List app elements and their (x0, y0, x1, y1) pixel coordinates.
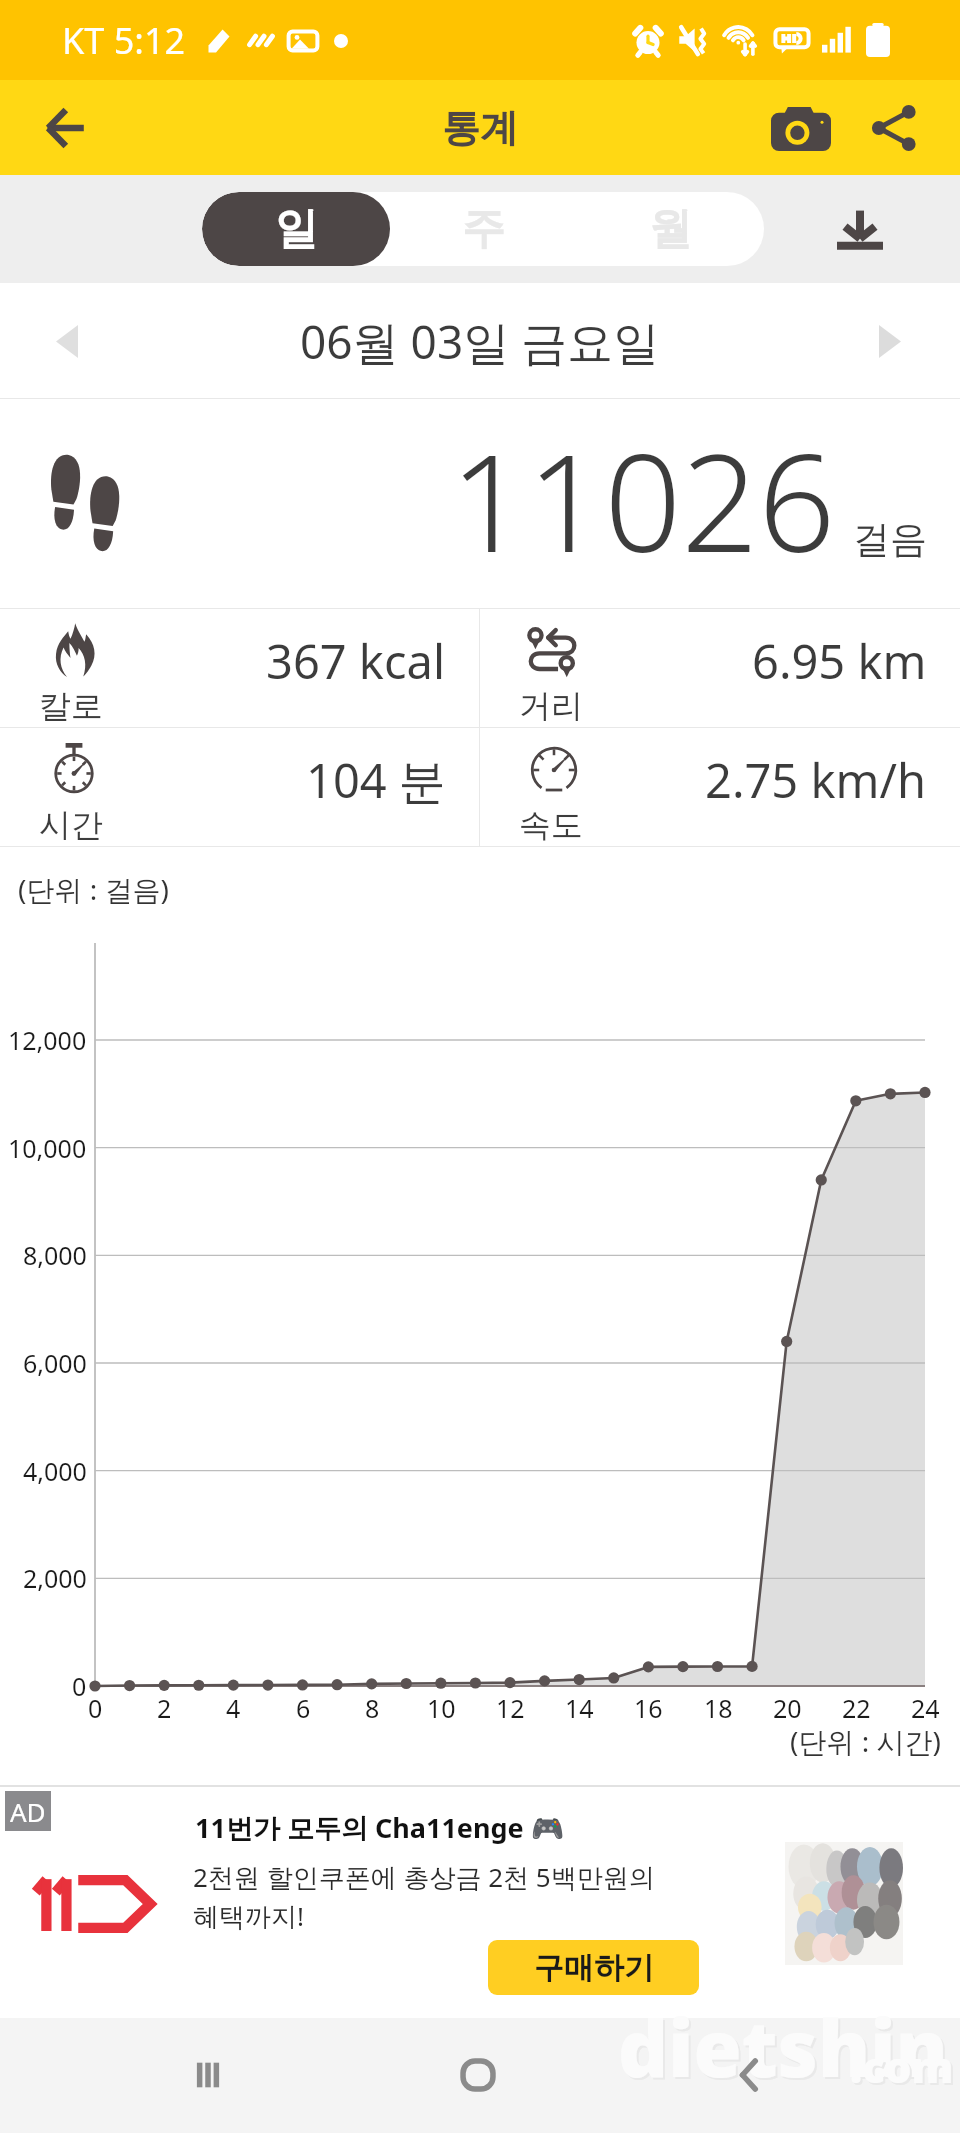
button[interactable]: Back (706, 2031, 794, 2119)
button[interactable]: 월 (577, 192, 764, 266)
button[interactable]: Next day (854, 305, 926, 377)
staticText: 6,000 (23, 1346, 87, 1380)
button[interactable]: 구매하기 (488, 1940, 699, 1995)
staticText: 주 (462, 202, 505, 256)
button[interactable]: Home (434, 2031, 522, 2119)
staticText: 일 (275, 202, 318, 256)
staticText: 거리 (519, 686, 583, 726)
button[interactable]: Recents (164, 2031, 252, 2119)
staticText: dietshin (618, 1994, 948, 2100)
staticText: .com (850, 2038, 954, 2095)
staticText: 20 (773, 1691, 802, 1725)
staticText: 월 (649, 202, 692, 256)
staticText: 혜택까지! (193, 1898, 304, 1934)
staticText: 22 (842, 1691, 871, 1725)
staticText: 104 분 (306, 748, 446, 812)
staticText: (단위 : 걸음) (18, 870, 169, 908)
staticText: 8,000 (23, 1238, 87, 1272)
staticText: 구매하기 (534, 1949, 654, 1987)
staticText: (단위 : 시간) (790, 1722, 941, 1760)
staticText: 12,000 (8, 1023, 87, 1057)
staticText: 6.95 km (752, 629, 927, 693)
staticText: 4,000 (23, 1454, 87, 1488)
staticText: 8 (365, 1691, 380, 1725)
button[interactable]: AD (0, 1785, 960, 2018)
staticText: .com (852, 2040, 956, 2097)
button[interactable]: 속도 (480, 728, 960, 846)
staticText: 2천원 할인쿠폰에 총상금 2천 5백만원의 (193, 1859, 655, 1895)
button[interactable]: 칼로 (0, 609, 479, 727)
button[interactable]: 시간 (0, 728, 479, 846)
staticText: 2 (157, 1691, 172, 1725)
staticText: AD (10, 1794, 46, 1829)
staticText: 11026 (450, 408, 836, 592)
staticText: 2,000 (23, 1561, 87, 1595)
staticText: 0 (88, 1691, 103, 1725)
staticText: 2.75 km/h (705, 748, 927, 812)
staticText: 4 (226, 1691, 241, 1725)
staticText: 시간 (39, 805, 103, 845)
staticText: 14 (565, 1691, 594, 1725)
staticText: 06월 03일 금요일 (300, 310, 660, 373)
button[interactable]: Download (824, 193, 896, 265)
staticText: dietshin (620, 1996, 950, 2102)
staticText: 0 (72, 1669, 87, 1703)
staticText: 6 (296, 1691, 311, 1725)
staticText: 통계 (442, 104, 518, 152)
staticText: 11번가 모두의 Cha11enge 🎮 (195, 1809, 565, 1846)
button[interactable]: Camera (765, 92, 837, 164)
staticText: 16 (634, 1691, 663, 1725)
button[interactable]: 주 (390, 192, 577, 266)
staticText: 18 (704, 1691, 733, 1725)
staticText: 367 kcal (266, 629, 446, 693)
staticText: KT 5:12 (62, 16, 186, 65)
button[interactable]: 일 (202, 192, 390, 266)
button[interactable]: 거리 (480, 609, 960, 727)
staticText: 24 (911, 1691, 940, 1725)
staticText: 걸음 (853, 516, 927, 563)
button[interactable]: Previous day (31, 305, 103, 377)
staticText: 칼로 (39, 686, 103, 726)
button[interactable]: Back (27, 90, 103, 166)
staticText: 10 (427, 1691, 456, 1725)
staticText: 10,000 (8, 1131, 87, 1165)
button[interactable]: Share (858, 92, 930, 164)
staticText: 12 (496, 1691, 525, 1725)
staticText: 속도 (519, 805, 583, 845)
